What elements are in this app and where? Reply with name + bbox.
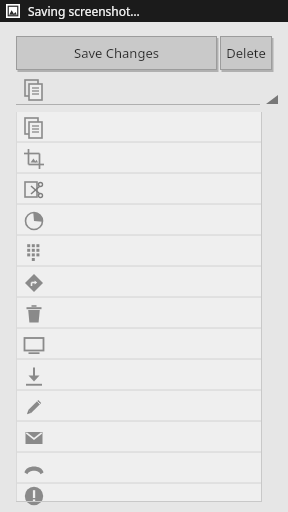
button[interactable]: Copy [16, 112, 262, 143]
button[interactable]: Download [16, 360, 262, 391]
button[interactable]: Save Changes [16, 36, 217, 70]
button[interactable]: Cut [16, 174, 262, 205]
button[interactable]: Dialpad [16, 236, 262, 267]
button[interactable]: Crop [16, 143, 262, 174]
button[interactable]: Edit [16, 391, 262, 422]
button[interactable]: Data usage [16, 205, 262, 236]
button[interactable]: End call [16, 453, 262, 484]
button[interactable]: Email [16, 422, 262, 453]
staticText: Delete [226, 44, 266, 62]
button[interactable]: Directions [16, 267, 262, 298]
staticText: Save Changes [74, 44, 159, 62]
button[interactable]: Error [16, 484, 262, 502]
staticText: Saving screenshot… [28, 3, 140, 19]
button[interactable]: Delete [16, 298, 262, 329]
button[interactable]: Delete [220, 36, 272, 70]
button[interactable]: Desktop display [16, 329, 262, 360]
button[interactable]: Select icon [16, 76, 272, 104]
